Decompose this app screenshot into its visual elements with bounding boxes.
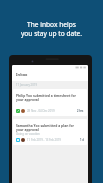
button[interactable]: Philip Yoo submitted a timesheet for [13,89,87,116]
staticText: 2 hrs [77,109,84,113]
button[interactable]: Samantha Yoo submitted a plan for [13,119,87,145]
staticText: Going on vacation [16,132,40,136]
staticText: Inbox [16,72,28,77]
staticText: you stay up to date. [0,29,103,38]
staticText: 11 Feb 2019 - 13 Feb 2019 [27,138,61,142]
staticText: 11 January 2019 [16,83,37,87]
staticText: your approval [16,97,39,101]
staticText: The inbox helps [0,20,103,29]
staticText: 28 Nov - 04 Dec 2019 [27,109,55,113]
staticText: 1 d [80,138,84,142]
button[interactable]: Inbox [12,65,88,81]
staticText: Philip Yoo submitted a timesheet for [16,93,77,97]
staticText: Samantha Yoo submitted a plan for [16,123,74,127]
staticText: your approval [16,127,39,131]
